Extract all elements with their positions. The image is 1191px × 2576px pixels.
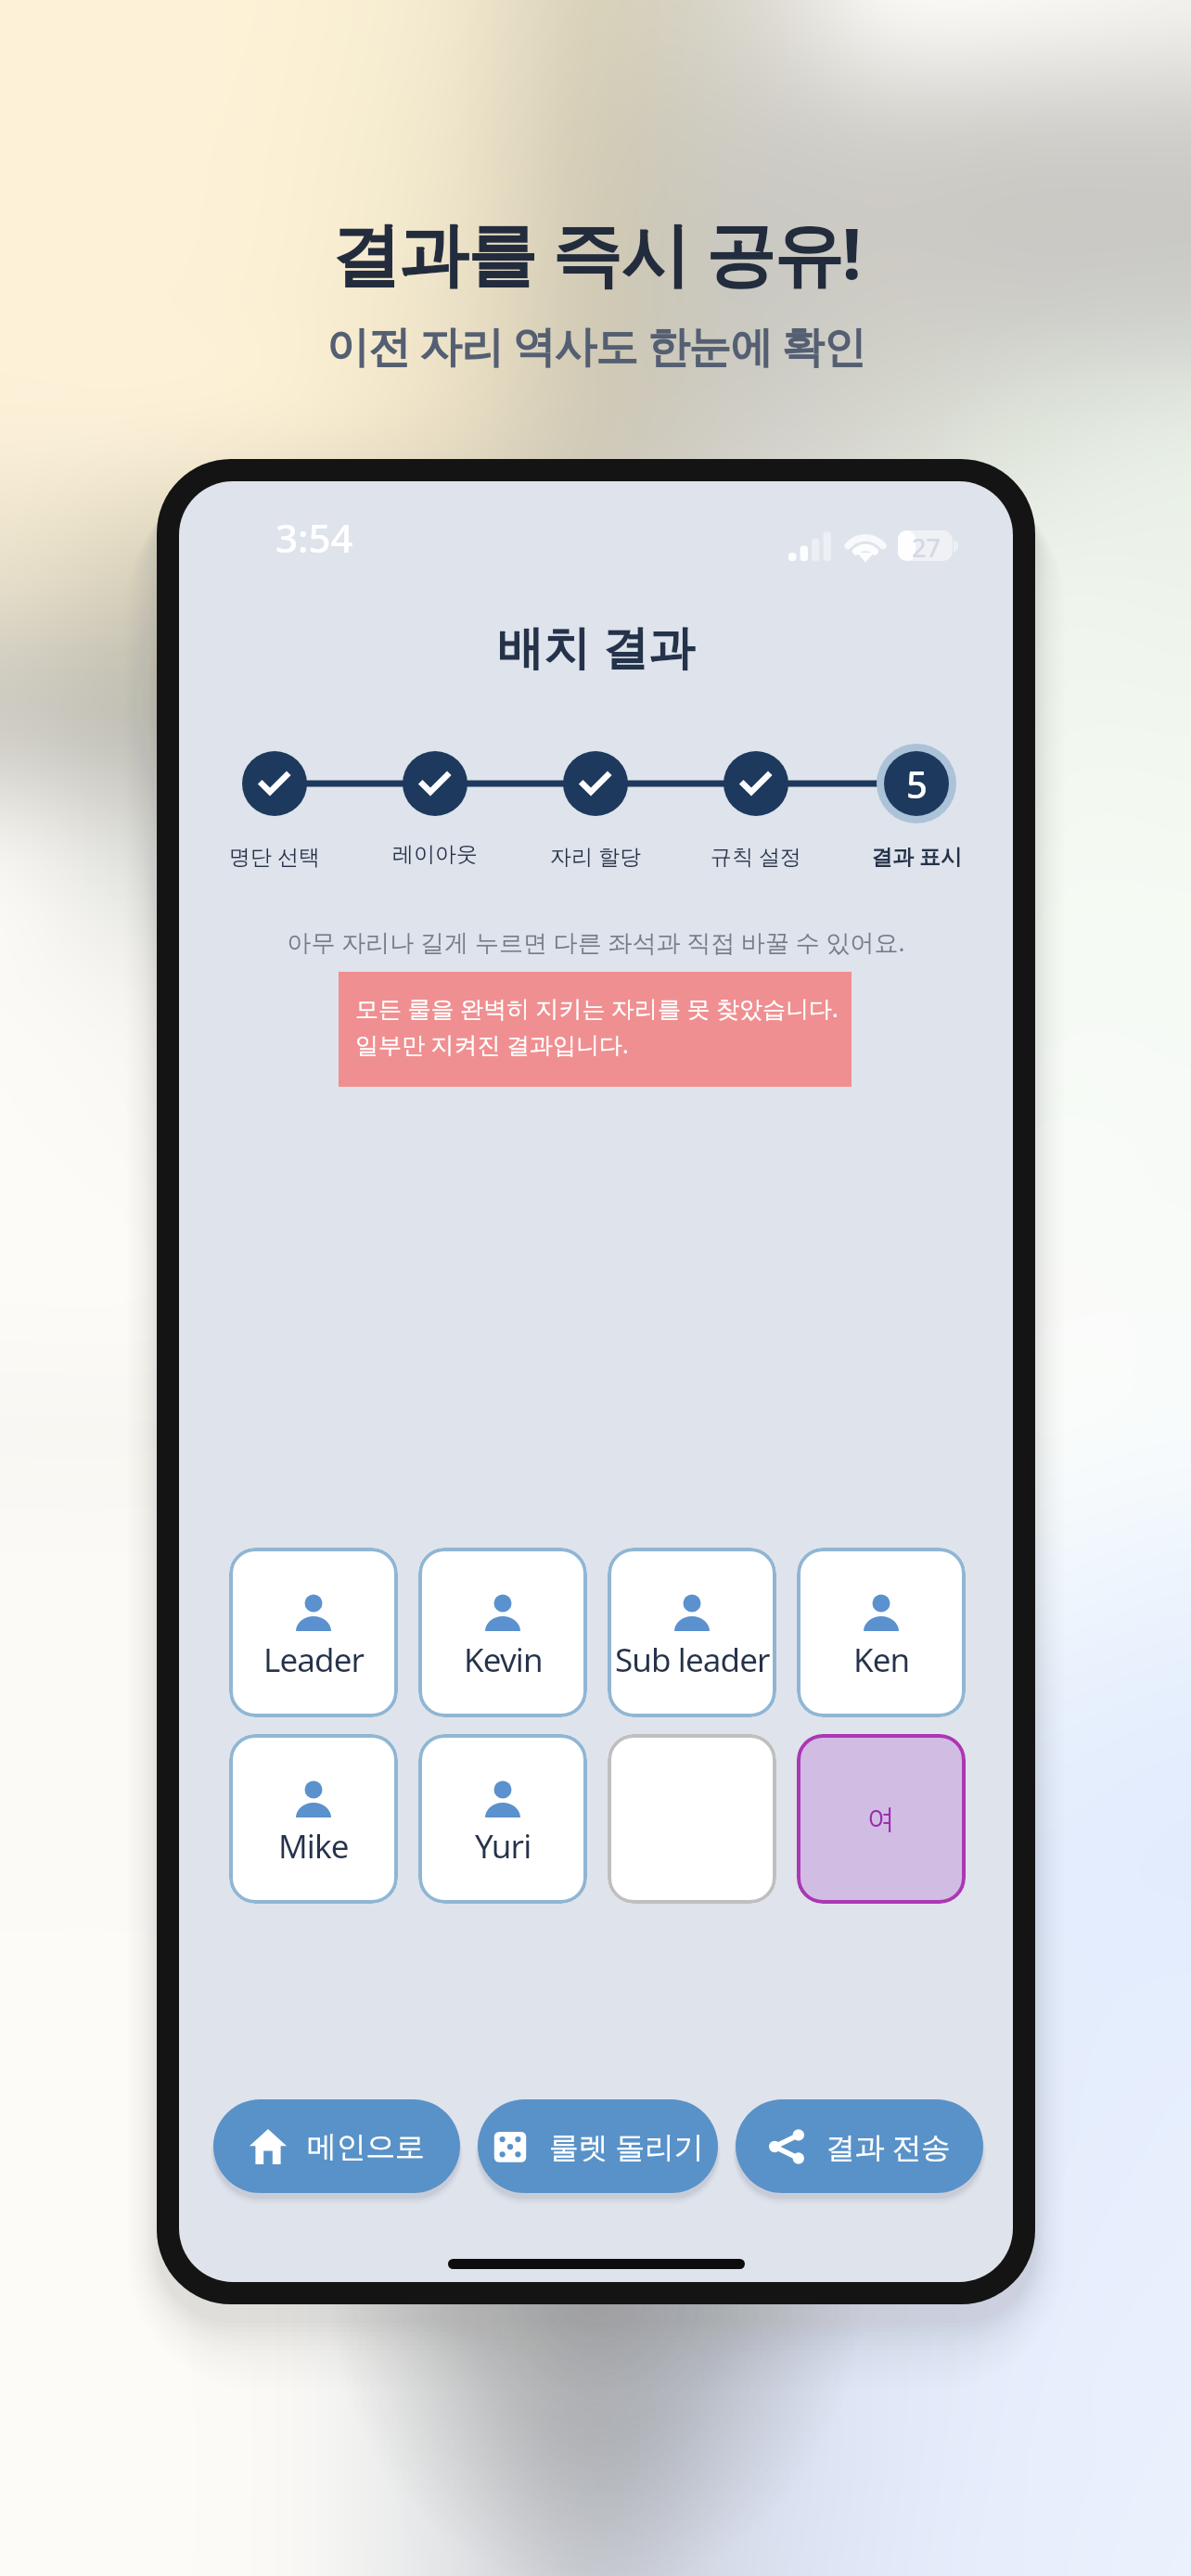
staticText: 27 [912, 530, 941, 561]
button[interactable]: 레이아웃 [361, 747, 509, 868]
staticText: 아무 자리나 길게 누르면 다른 좌석과 직접 바꿀 수 있어요. [179, 925, 1013, 959]
button[interactable]: Seat Kevin [418, 1548, 587, 1717]
button[interactable]: 결과 전송 [736, 2099, 983, 2193]
staticText: 결과를 즉시 공유! [0, 205, 1191, 300]
staticText: 레이아웃 [392, 841, 478, 868]
staticText: Kevin [464, 1638, 543, 1682]
staticText: 5 [906, 759, 928, 809]
staticText: Mike [278, 1824, 349, 1868]
staticText: 이전 자리 역사도 한눈에 확인 [0, 316, 1191, 375]
button[interactable]: Seat Sub leader [608, 1548, 776, 1717]
button[interactable]: 자리 할당 [521, 747, 670, 870]
staticText: Leader [263, 1638, 365, 1682]
staticText: 규칙 설정 [711, 841, 801, 870]
staticText: 자리 할당 [550, 841, 641, 870]
button[interactable]: 명단 선택 [200, 747, 349, 870]
button[interactable]: 룰렛 돌리기 [478, 2099, 718, 2193]
button[interactable]: Seat Mike [229, 1734, 398, 1904]
staticText: 룰렛 돌리기 [549, 2126, 704, 2167]
button[interactable]: Seat Ken [797, 1548, 966, 1717]
button[interactable]: Seat Yuri [418, 1734, 587, 1904]
staticText: Ken [853, 1638, 910, 1682]
staticText: 메인으로 [307, 2128, 425, 2165]
button[interactable]: Seat 여 [797, 1734, 966, 1904]
staticText: 3:54 [275, 511, 353, 564]
button[interactable]: Seat Leader [229, 1548, 398, 1717]
staticText: 배치 결과 [179, 615, 1013, 678]
staticText: 명단 선택 [229, 841, 320, 870]
button[interactable]: Empty seat [608, 1734, 776, 1904]
staticText: 일부만 지켜진 결과입니다. [355, 1028, 629, 1060]
button[interactable]: 규칙 설정 [682, 747, 830, 870]
staticText: 결과 표시 [871, 841, 962, 870]
button[interactable]: 결과 표시 [842, 747, 991, 870]
staticText: 모든 룰을 완벽히 지키는 자리를 못 찾았습니다. [355, 992, 839, 1024]
staticText: 결과 전송 [826, 2126, 951, 2167]
button[interactable]: 메인으로 [213, 2099, 460, 2193]
staticText: Sub leader [615, 1638, 770, 1682]
staticText: Yuri [475, 1824, 531, 1868]
staticText: 여 [867, 1802, 895, 1837]
